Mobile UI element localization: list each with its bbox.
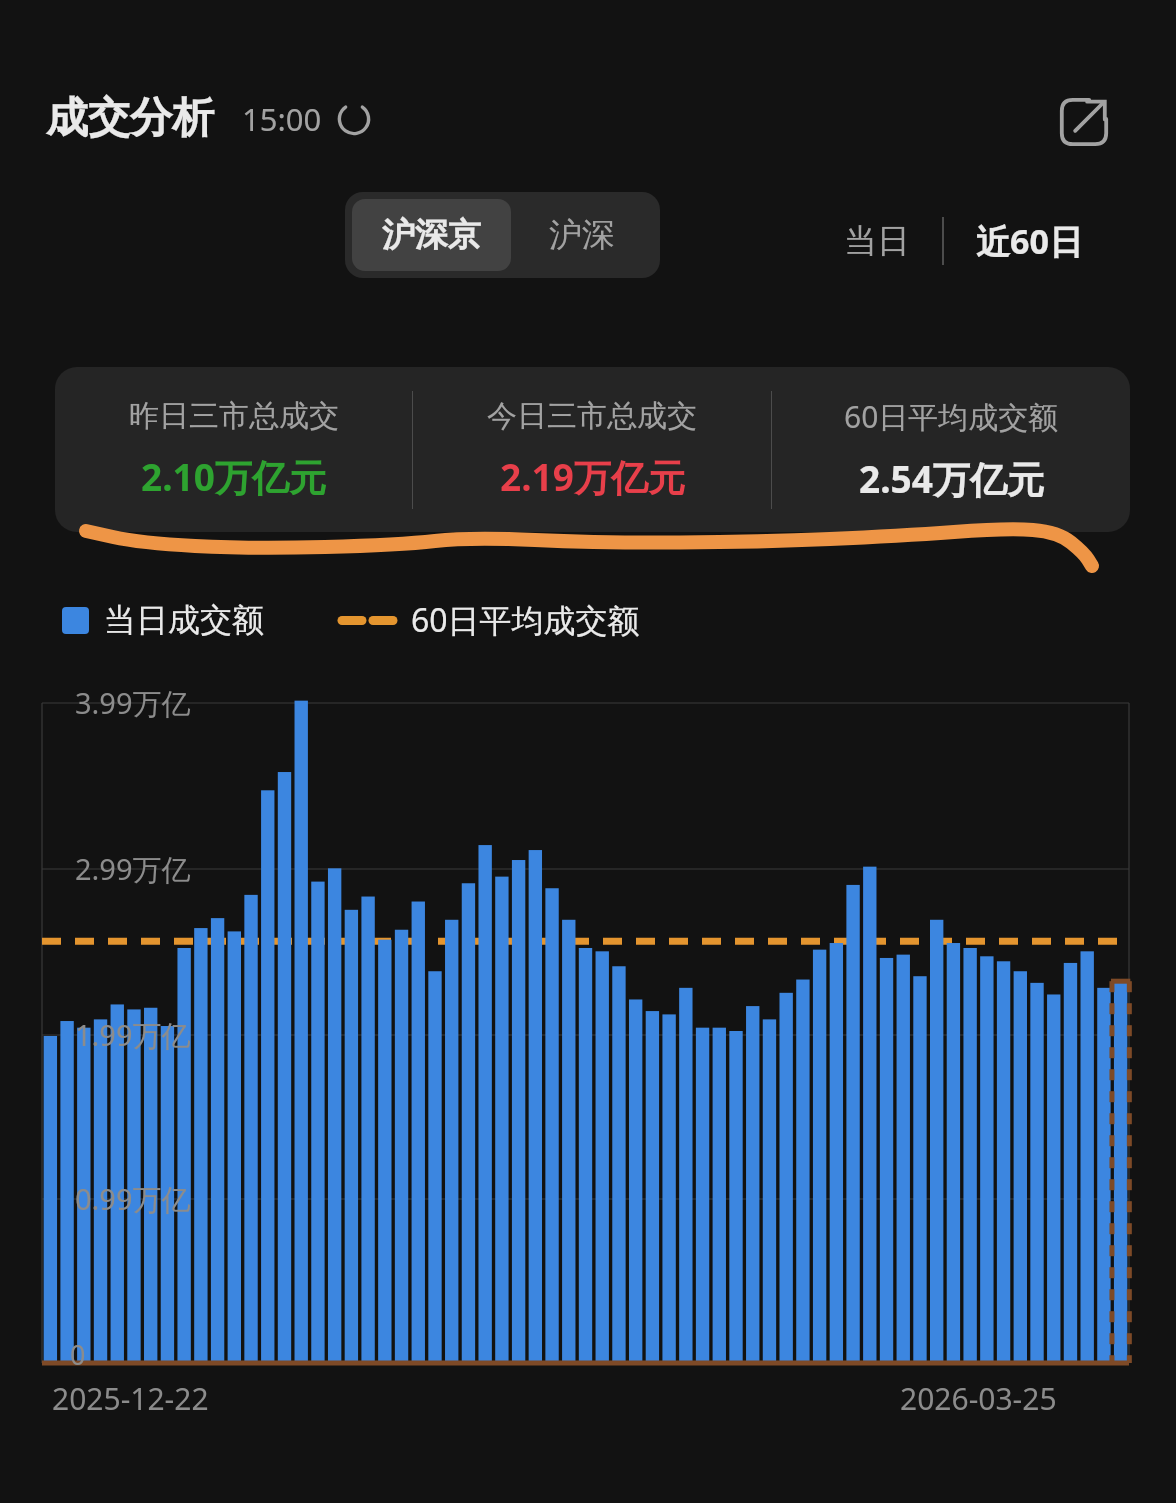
- staticText: 3.99万亿: [75, 683, 191, 723]
- staticText: 今日三市总成交: [487, 397, 697, 435]
- button[interactable]: 沪深: [511, 199, 653, 271]
- button[interactable]: 近60日: [960, 206, 1099, 276]
- staticText: 2.99万亿: [75, 849, 191, 889]
- button[interactable]: Refresh: [336, 101, 372, 137]
- staticText: 2.10万亿元: [141, 451, 326, 502]
- staticText: 2.19万亿元: [500, 451, 685, 502]
- staticText: 当日: [844, 220, 910, 262]
- staticText: 沪深: [549, 214, 615, 256]
- staticText: 沪深京: [382, 214, 481, 256]
- button[interactable]: 沪深京: [352, 199, 511, 271]
- staticText: 1.99万亿: [75, 1015, 191, 1055]
- staticText: 当日成交额: [104, 600, 264, 640]
- staticText: 60日平均成交额: [844, 396, 1059, 437]
- button[interactable]: 当日: [828, 208, 926, 274]
- staticText: 2025-12-22: [52, 1378, 209, 1419]
- staticText: 2.54万亿元: [859, 453, 1044, 504]
- staticText: 0: [70, 1336, 86, 1373]
- staticText: 60日平均成交额: [411, 598, 640, 642]
- button[interactable]: Share: [1048, 86, 1120, 158]
- staticText: 成交分析: [46, 92, 214, 145]
- staticText: 近60日: [976, 218, 1083, 264]
- staticText: 2026-03-25: [900, 1378, 1057, 1419]
- staticText: 昨日三市总成交: [129, 397, 339, 435]
- staticText: 0.99万亿: [75, 1179, 191, 1219]
- staticText: 15:00: [242, 98, 322, 140]
